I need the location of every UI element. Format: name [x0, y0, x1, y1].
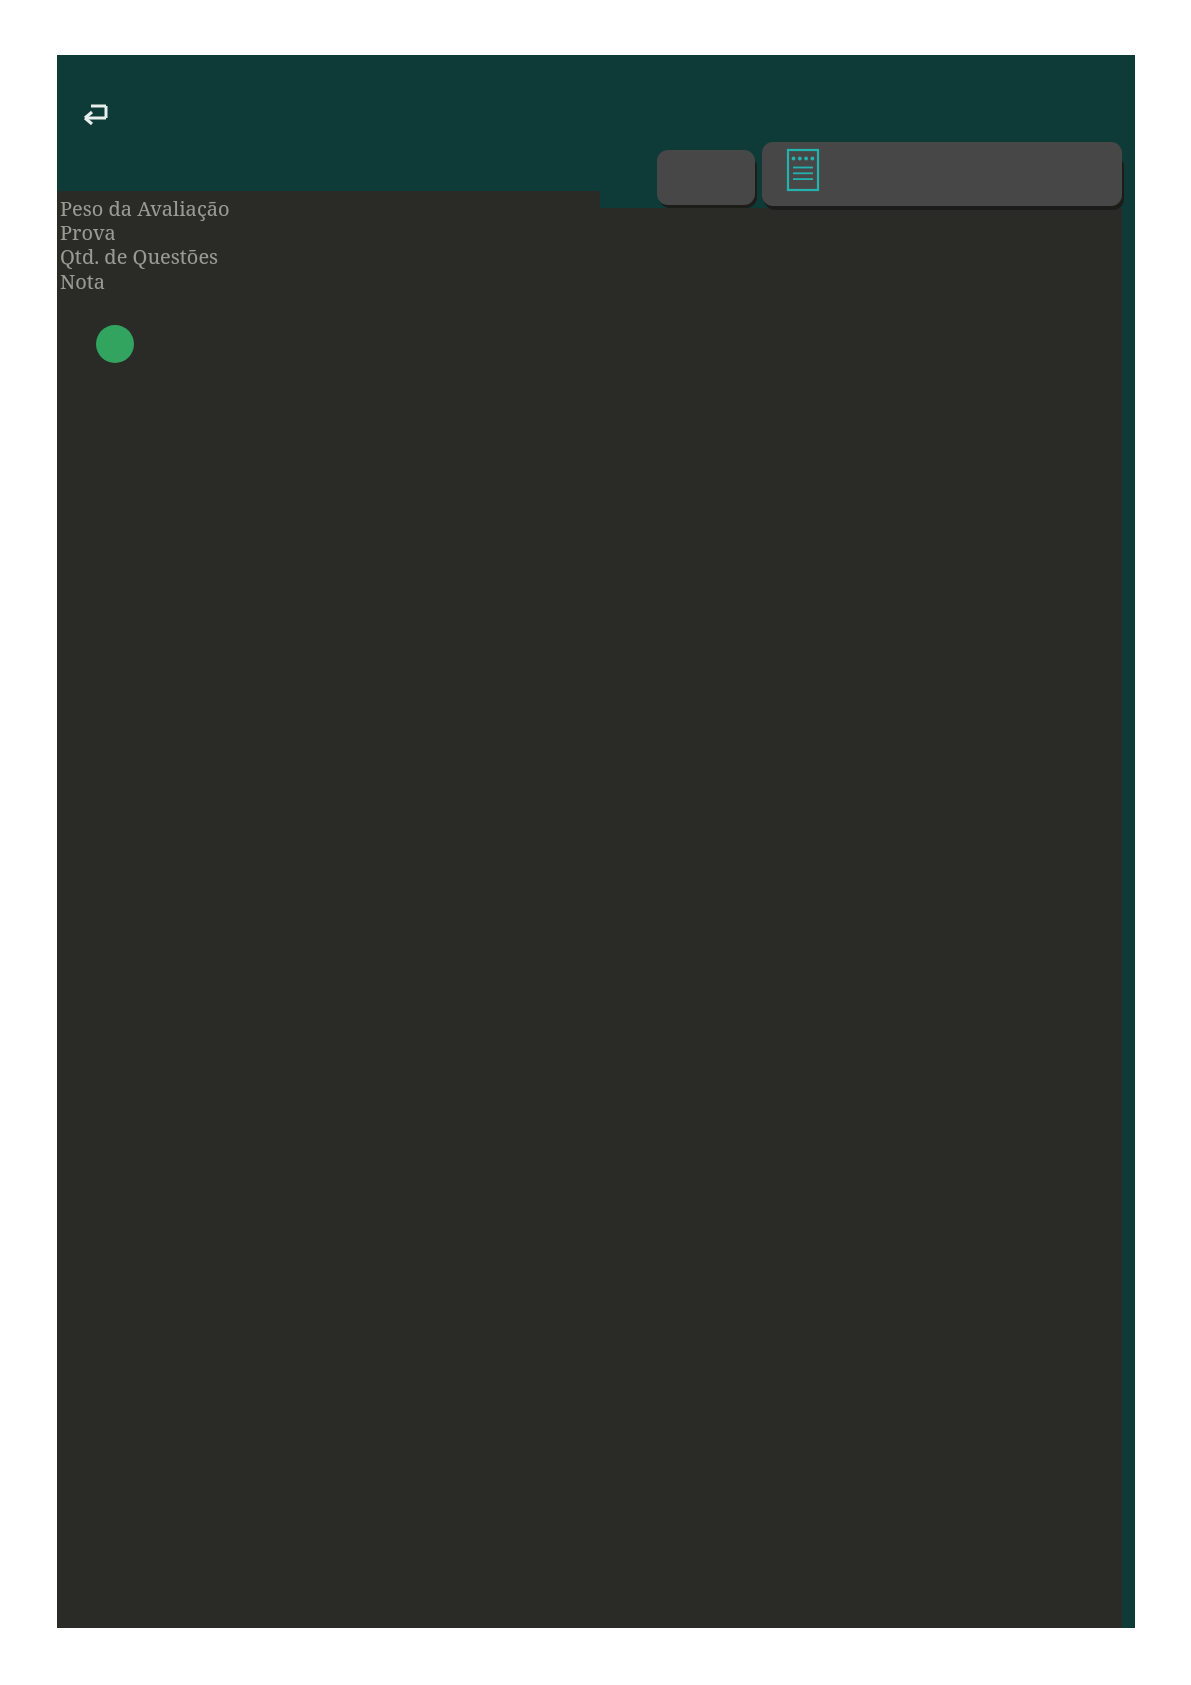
button[interactable]: Back: [68, 90, 124, 142]
button[interactable]: Assessment details: [762, 142, 1122, 206]
staticText: Peso da Avaliação: [60, 195, 230, 222]
staticText: Qtd. de Questões: [60, 243, 219, 270]
staticText: Prova: [60, 219, 116, 246]
staticText: Nota: [60, 268, 106, 295]
button[interactable]: Filter: [657, 150, 755, 205]
